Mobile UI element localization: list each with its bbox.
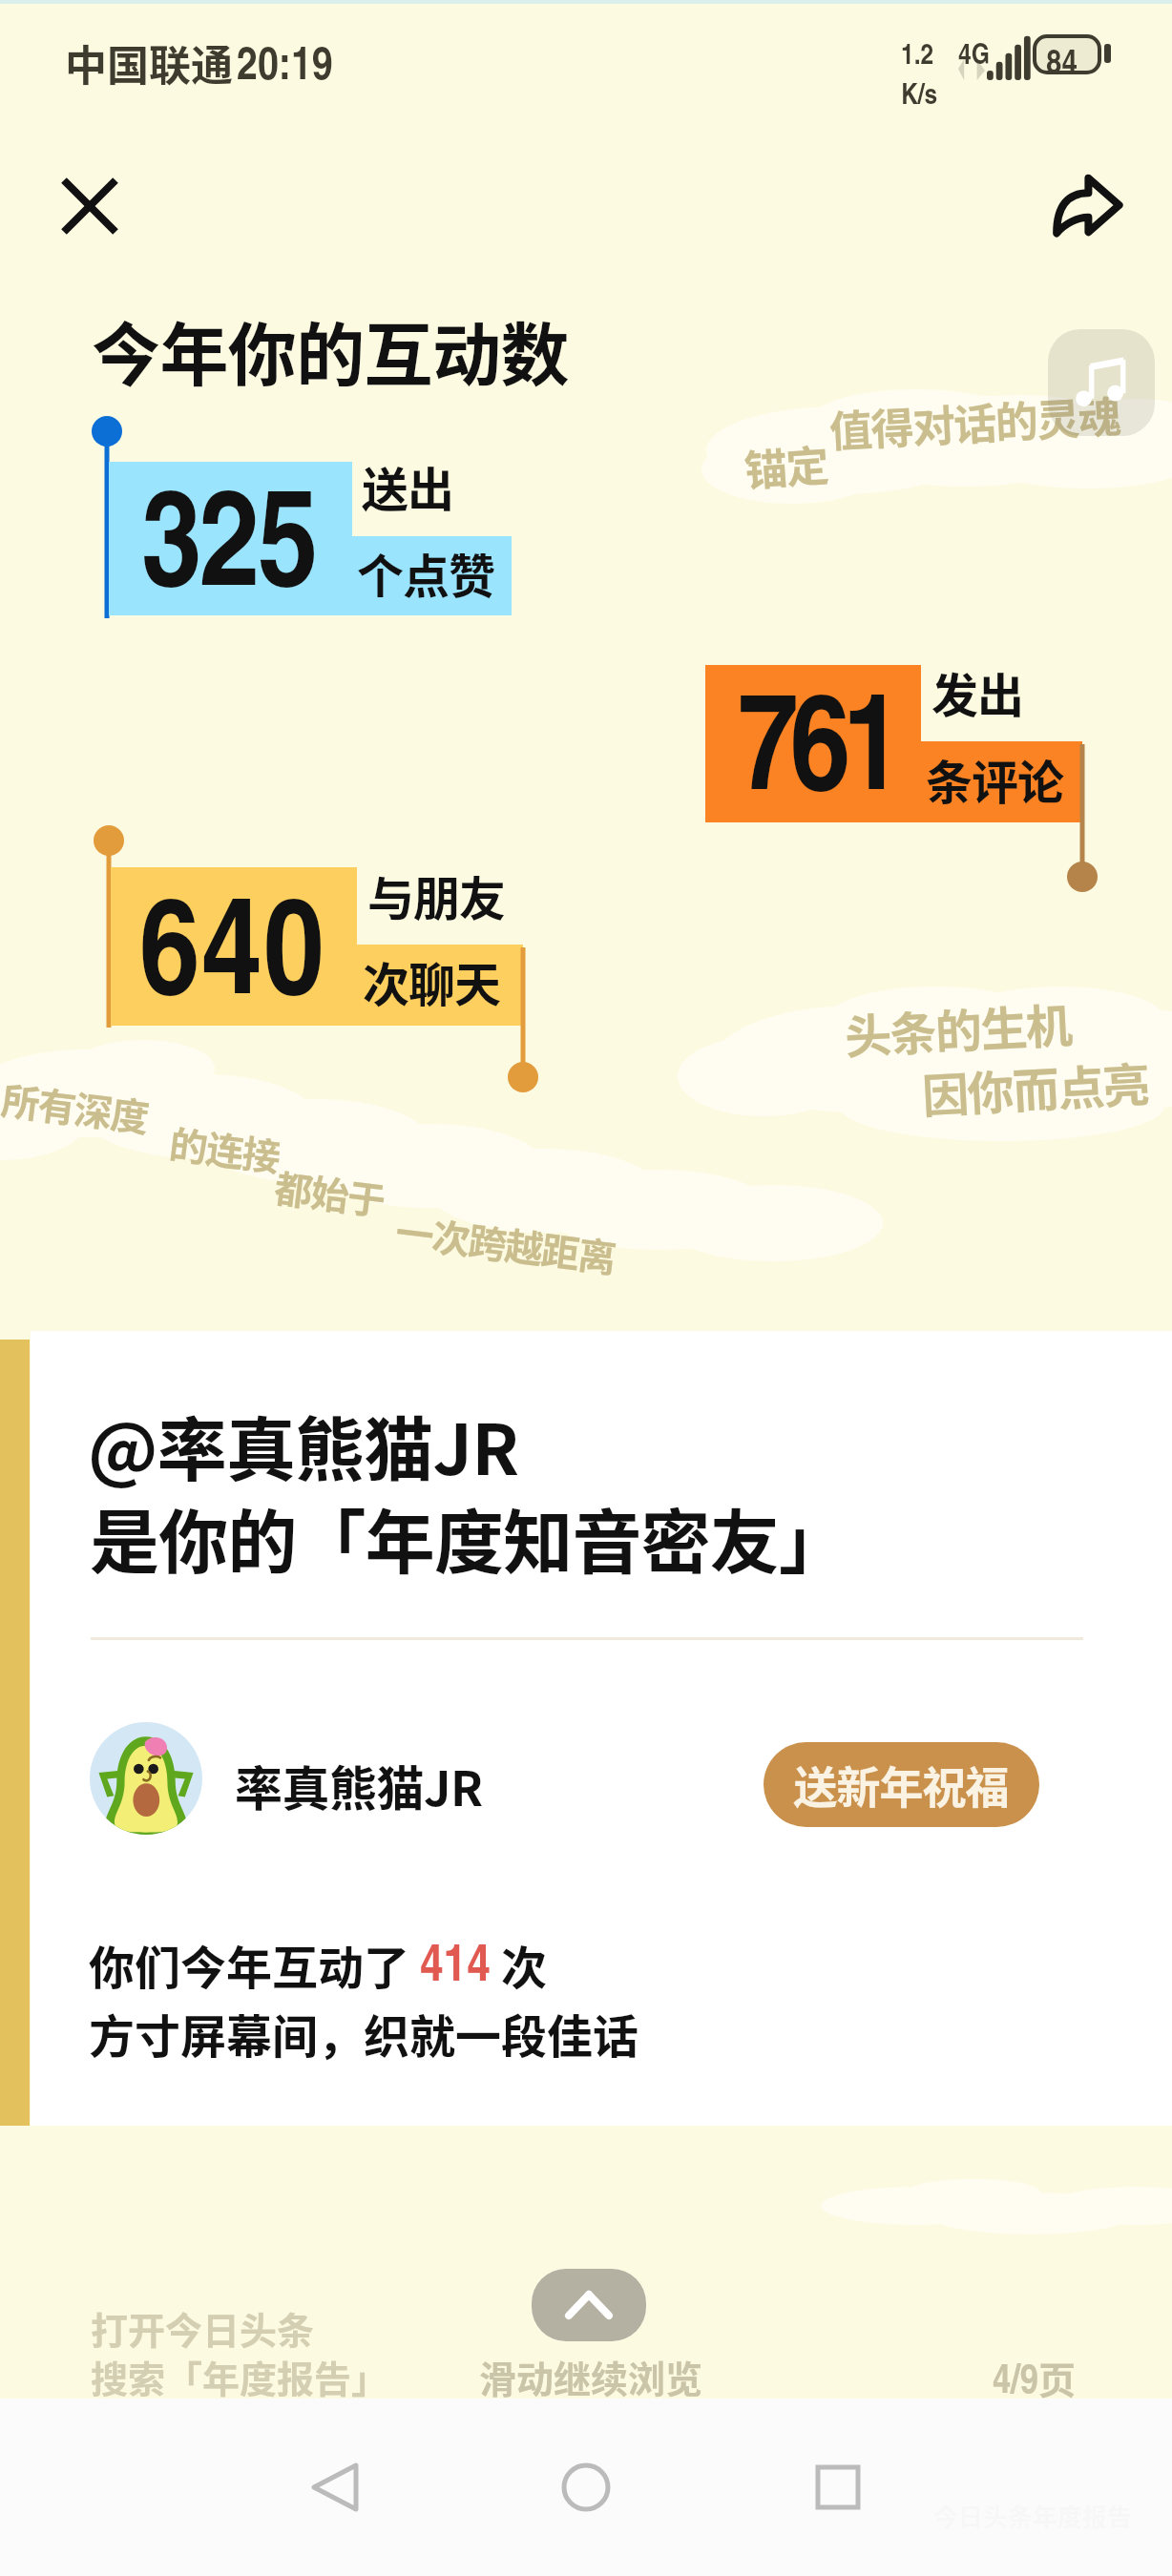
staticText: 640	[139, 845, 325, 1034]
staticText: 页	[1038, 2351, 1077, 2404]
staticText: 325	[141, 437, 316, 626]
staticText: 次	[491, 1931, 547, 1998]
staticText: 送出	[362, 452, 454, 520]
staticText: 值得对话的灵魂	[828, 383, 1122, 460]
button[interactable]: Scroll up	[532, 2269, 646, 2341]
staticText: 4G	[958, 32, 990, 73]
button[interactable]: Close	[44, 160, 136, 252]
staticText: 1.2	[901, 32, 934, 73]
staticText: 率真熊猫JR	[235, 1751, 483, 1819]
staticText: 发出	[931, 658, 1024, 726]
staticText: 滑动继续浏览	[479, 2350, 703, 2403]
button[interactable]: 送新年祝福	[764, 1742, 1039, 1827]
staticText: 因你而点亮	[920, 1047, 1151, 1127]
staticText: 的连接	[167, 1115, 283, 1183]
staticText: 84	[1046, 35, 1078, 84]
staticText: 头条的生机	[843, 988, 1073, 1068]
staticText: 761	[738, 641, 895, 830]
button[interactable]: Home	[529, 2430, 643, 2545]
button[interactable]: Recents	[781, 2430, 895, 2545]
button[interactable]: Back	[277, 2430, 391, 2545]
staticText: 条评论	[926, 745, 1064, 813]
staticText: 20:19	[237, 29, 333, 93]
staticText: 4/9	[993, 2349, 1038, 2405]
button[interactable]: Music	[1048, 329, 1155, 436]
staticText: 送新年祝福	[794, 1753, 1009, 1817]
staticText: K/s	[901, 73, 938, 113]
staticText: 锚定	[742, 431, 830, 499]
staticText: @率真熊猫JR	[88, 1394, 519, 1495]
staticText: 方寸屏幕间，织就一段佳话	[89, 2000, 639, 2067]
staticText: 所有深度	[0, 1071, 151, 1143]
staticText: 打开今日头条	[91, 2301, 315, 2355]
staticText: 中国联通	[65, 32, 233, 93]
staticText: 与朋友	[367, 862, 506, 929]
staticText: 搜索「年度报告」	[91, 2350, 389, 2403]
staticText: 是你的「年度知音密友」	[90, 1486, 848, 1588]
staticText: 今年你的互动数	[92, 300, 569, 399]
staticText: 次聊天	[363, 947, 501, 1015]
staticText: 414	[420, 1923, 491, 1996]
staticText: 个点赞	[357, 539, 495, 607]
staticText: 你们今年互动了	[89, 1931, 420, 1998]
staticText: 一次跨越距离	[393, 1202, 618, 1284]
button[interactable]: Share	[1034, 152, 1141, 259]
staticText: 都始于	[272, 1158, 388, 1227]
